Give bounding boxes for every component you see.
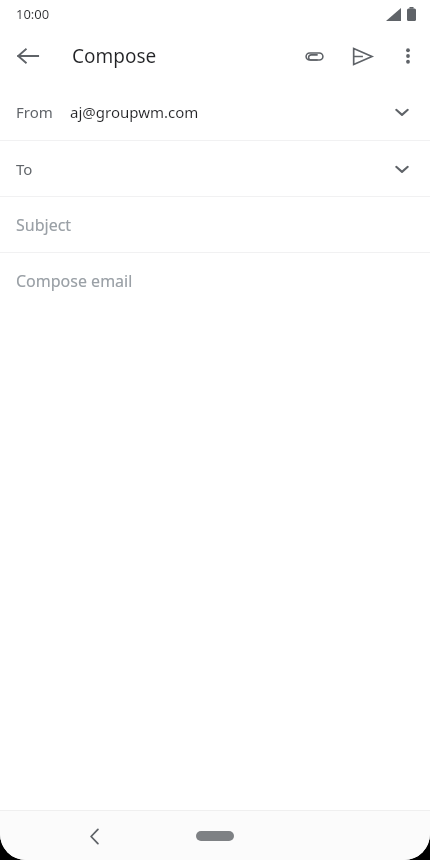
staticText: aj@groupwm.com [70,102,199,122]
button[interactable]: Attach file [290,32,338,80]
staticText: Subject [16,214,72,236]
staticText: 10:00 [16,5,50,23]
button[interactable]: Compose email [0,253,430,308]
button[interactable]: Home [185,821,245,851]
button[interactable]: To [0,141,430,196]
staticText: From [16,102,53,122]
button[interactable]: Back [72,814,116,858]
button[interactable]: From [0,84,430,140]
button[interactable]: Back [4,32,52,80]
button[interactable]: More options [386,34,430,78]
button[interactable]: Subject [0,197,430,252]
staticText: Compose [72,43,157,69]
staticText: To [16,159,33,179]
staticText: Compose email [16,270,133,292]
button[interactable]: Send [338,32,386,80]
